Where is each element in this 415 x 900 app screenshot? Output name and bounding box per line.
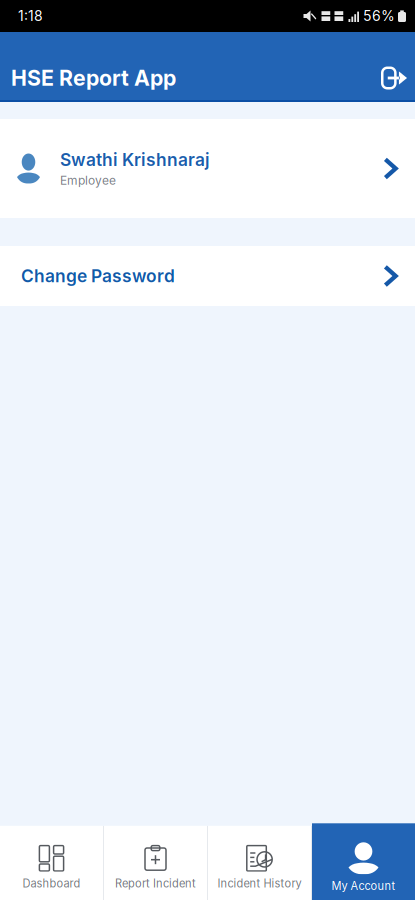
staticText: 56% <box>363 7 395 24</box>
staticText: My Account <box>331 879 395 893</box>
button[interactable]: Change Password <box>0 246 415 306</box>
staticText: 1:18 <box>18 7 43 24</box>
staticText: HSE Report App <box>11 65 176 91</box>
button[interactable]: Incident History <box>208 826 311 900</box>
staticText: Incident History <box>217 877 301 890</box>
staticText: Report Incident <box>115 877 196 890</box>
button[interactable]: Log out <box>373 63 415 93</box>
button[interactable]: Report Incident <box>104 826 207 900</box>
staticText: Swathi Krishnaraj <box>60 149 210 170</box>
staticText: Dashboard <box>22 877 80 890</box>
button[interactable]: Dashboard <box>0 826 103 900</box>
staticText: Change Password <box>21 265 175 286</box>
button[interactable]: Swathi Krishnaraj <box>0 119 415 218</box>
staticText: Employee <box>60 173 116 188</box>
button[interactable]: My Account <box>312 826 415 900</box>
